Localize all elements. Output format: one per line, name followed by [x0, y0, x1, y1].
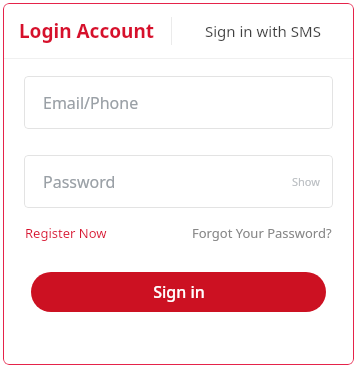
button[interactable]: Forgot Your Password?	[192, 224, 332, 242]
staticText: Forgot Your Password?	[192, 224, 332, 242]
staticText: Register Now	[25, 224, 107, 242]
button[interactable]: Sign in	[31, 272, 326, 312]
staticText: Login Account	[19, 18, 155, 44]
staticText: Password	[43, 171, 116, 193]
staticText: Sign in with SMS	[205, 21, 321, 41]
staticText: Show	[292, 174, 320, 189]
staticText: Sign in	[153, 281, 205, 303]
button[interactable]: Login Account	[3, 3, 171, 58]
staticText: Email/Phone	[43, 92, 139, 114]
button[interactable]: Email/Phone	[24, 76, 333, 129]
button[interactable]: Password	[24, 155, 333, 208]
button[interactable]: Register Now	[25, 224, 107, 242]
button[interactable]: Show	[292, 174, 320, 189]
button[interactable]: Sign in with SMS	[172, 3, 354, 58]
